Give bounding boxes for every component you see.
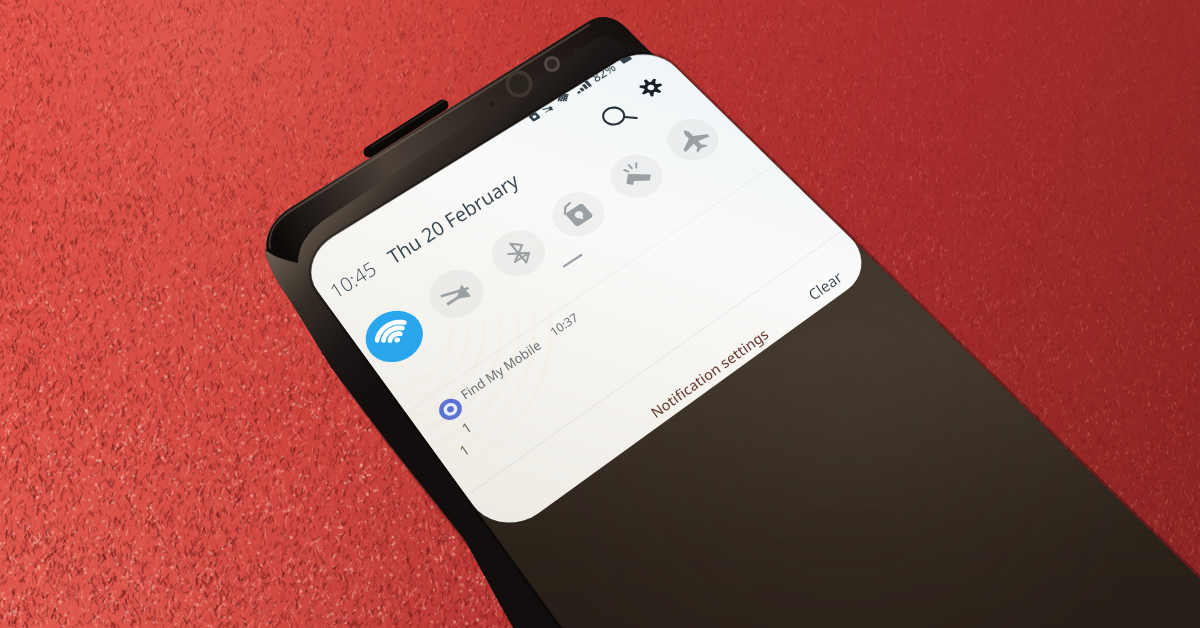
button[interactable]: Phone on red carpet showing notification… xyxy=(0,0,1200,628)
